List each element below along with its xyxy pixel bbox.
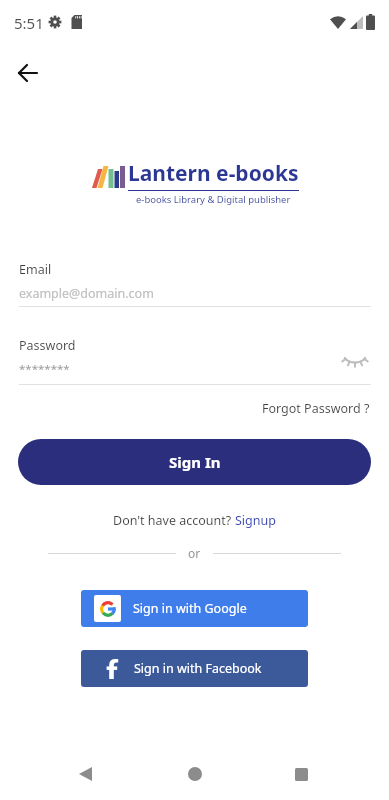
staticText: Sign In	[169, 452, 221, 472]
button[interactable]	[287, 760, 315, 788]
button[interactable]	[341, 352, 371, 374]
staticText: Sign in with Google	[133, 600, 247, 617]
staticText: Password	[19, 337, 76, 354]
button[interactable]: Sign in with Facebook	[81, 650, 308, 687]
staticText: 5:51	[14, 13, 44, 33]
staticText: Lantern e-books	[128, 159, 299, 188]
button[interactable]: Sign in with Google	[81, 590, 308, 627]
staticText: Email	[19, 261, 52, 278]
staticText: Sign in with Facebook	[134, 660, 262, 677]
staticText: example@domain.com	[19, 285, 154, 302]
button[interactable]: Forgot Password ?	[262, 400, 370, 417]
staticText: e-books Library & Digital publisher	[136, 193, 291, 206]
button[interactable]: Signup	[235, 512, 276, 529]
button[interactable]	[16, 61, 40, 85]
button[interactable]	[72, 760, 100, 788]
staticText: ********	[19, 361, 70, 377]
button[interactable]	[181, 760, 209, 788]
button[interactable]: Sign In	[18, 439, 371, 485]
staticText: or	[188, 545, 201, 561]
staticText: Don't have account?	[113, 512, 235, 529]
